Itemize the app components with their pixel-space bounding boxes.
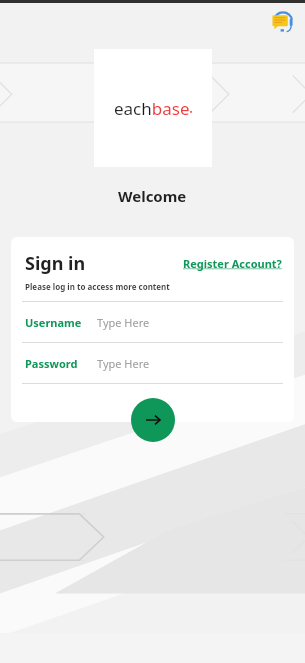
staticText: Username (25, 315, 97, 330)
staticText: Type Here (97, 315, 150, 330)
staticText: Sign in (25, 251, 86, 276)
button[interactable]: Password (11, 343, 294, 383)
button[interactable]: Support chat (269, 8, 297, 36)
button[interactable]: Register Account? (183, 256, 282, 271)
staticText: Password (25, 356, 97, 371)
button[interactable]: Sign in (131, 398, 175, 442)
staticText: Welcome (118, 186, 187, 206)
button[interactable]: Username (11, 302, 294, 342)
staticText: eachbase• (114, 97, 193, 120)
staticText: Please log in to access more content (25, 281, 170, 292)
staticText: Type Here (97, 356, 150, 371)
staticText: Register Account? (183, 256, 282, 271)
